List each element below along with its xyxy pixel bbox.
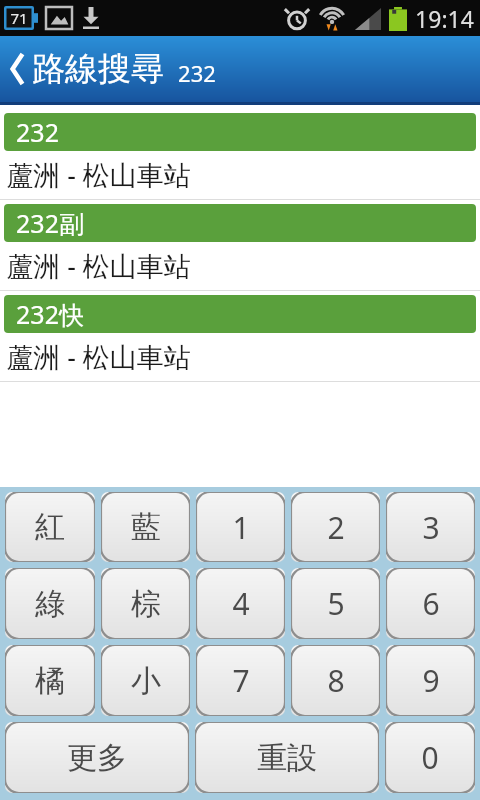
button[interactable]: 7 bbox=[196, 645, 285, 716]
button[interactable]: 5 bbox=[291, 568, 380, 639]
staticText: 綠 bbox=[35, 585, 65, 623]
staticText: 重設 bbox=[257, 739, 317, 777]
staticText: 0 bbox=[421, 737, 439, 778]
button[interactable]: 232 bbox=[0, 109, 480, 199]
button[interactable]: 棕 bbox=[101, 568, 190, 639]
button[interactable]: 3 bbox=[386, 492, 475, 562]
button[interactable]: 藍 bbox=[101, 492, 190, 562]
button[interactable]: Back bbox=[6, 47, 30, 91]
staticText: 小 bbox=[131, 662, 161, 700]
staticText: 232快 bbox=[16, 297, 84, 331]
button[interactable]: 1 bbox=[196, 492, 285, 562]
button[interactable]: 更多 bbox=[5, 722, 189, 793]
staticText: 棕 bbox=[131, 585, 161, 623]
staticText: 4 bbox=[232, 583, 250, 624]
staticText: 232 bbox=[178, 58, 216, 88]
button[interactable]: 橘 bbox=[5, 645, 95, 716]
button[interactable]: 232快 bbox=[0, 291, 480, 381]
staticText: 紅 bbox=[35, 508, 65, 546]
staticText: 路線搜尋 bbox=[32, 48, 164, 90]
staticText: 3 bbox=[422, 507, 440, 548]
staticText: 71 bbox=[10, 8, 28, 28]
button[interactable]: 紅 bbox=[5, 492, 95, 562]
staticText: 7 bbox=[232, 660, 250, 701]
staticText: 蘆洲 - 松山車站 bbox=[6, 247, 191, 284]
staticText: 藍 bbox=[131, 508, 161, 546]
staticText: 9 bbox=[422, 660, 440, 701]
button[interactable]: 6 bbox=[386, 568, 475, 639]
staticText: 8 bbox=[327, 660, 345, 701]
button[interactable]: 232副 bbox=[0, 200, 480, 290]
staticText: 2 bbox=[327, 507, 345, 548]
staticText: 蘆洲 - 松山車站 bbox=[6, 156, 191, 193]
button[interactable]: 9 bbox=[386, 645, 475, 716]
staticText: 6 bbox=[422, 583, 440, 624]
button[interactable]: 4 bbox=[196, 568, 285, 639]
staticText: 橘 bbox=[35, 662, 65, 700]
button[interactable]: Back bbox=[0, 36, 480, 102]
button[interactable]: 0 bbox=[385, 722, 475, 793]
staticText: 232 bbox=[16, 115, 59, 149]
staticText: 232副 bbox=[16, 206, 84, 240]
button[interactable]: 8 bbox=[291, 645, 380, 716]
staticText: 5 bbox=[327, 583, 345, 624]
staticText: 蘆洲 - 松山車站 bbox=[6, 338, 191, 375]
button[interactable]: 重設 bbox=[195, 722, 379, 793]
staticText: 19:14 bbox=[415, 3, 474, 34]
staticText: 更多 bbox=[67, 739, 127, 777]
button[interactable]: 綠 bbox=[5, 568, 95, 639]
button[interactable]: 小 bbox=[101, 645, 190, 716]
button[interactable]: 2 bbox=[291, 492, 380, 562]
staticText: 1 bbox=[232, 507, 250, 548]
